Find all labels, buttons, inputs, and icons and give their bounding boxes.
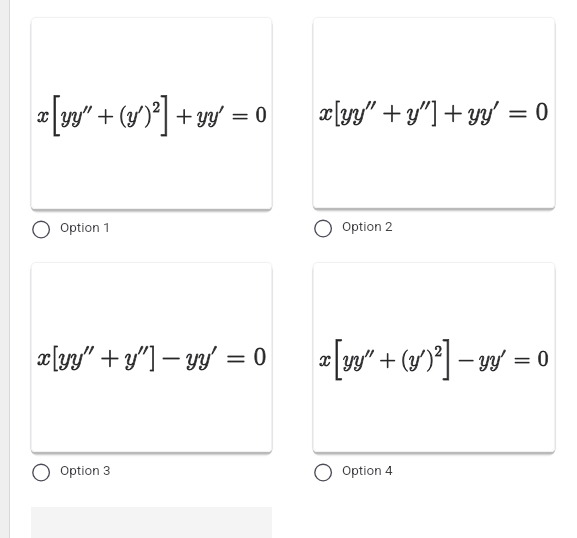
staticText: 𝑥[𝑦𝑦″ + 𝑦″] + 𝑦𝑦′ = 0 (319, 100, 549, 125)
staticText: 𝑥[𝑦𝑦″ + (𝑦′)2] + 𝑦𝑦′ = 0 (37, 93, 267, 134)
staticText: Option 1 (60, 219, 111, 235)
staticText: Option 3 (60, 462, 111, 478)
staticText: 𝑥[𝑦𝑦″ + (𝑦′)2] − 𝑦𝑦′ = 0 (319, 337, 549, 378)
button[interactable]: Option 3 (31, 452, 272, 490)
button[interactable]: 𝑥[𝑦𝑦″ + (𝑦′)2] + 𝑦𝑦′ = 0 (31, 17, 272, 209)
button[interactable]: Option 4 (313, 452, 555, 490)
staticText: 𝑥[𝑦𝑦″ + 𝑦″] + 𝑦𝑦′ = 0 (319, 100, 549, 125)
staticText: 𝑥[𝑦𝑦″ + (𝑦′)2] − 𝑦𝑦′ = 0 (319, 337, 549, 378)
button[interactable]: Option 1 (31, 209, 272, 247)
button[interactable]: Option 2 (313, 208, 555, 246)
button[interactable]: 𝑥[𝑦𝑦″ + (𝑦′)2] − 𝑦𝑦′ = 0 (313, 262, 555, 452)
staticText: Option 4 (342, 462, 393, 478)
staticText: 𝑥[𝑦𝑦″ + (𝑦′)2] + 𝑦𝑦′ = 0 (37, 93, 267, 134)
staticText: Option 2 (342, 218, 393, 234)
staticText: 𝑥[𝑦𝑦″ + 𝑦″] − 𝑦𝑦′ = 0 (37, 345, 267, 370)
button[interactable]: 𝑥[𝑦𝑦″ + 𝑦″] + 𝑦𝑦′ = 0 (313, 17, 555, 208)
button[interactable]: 𝑥[𝑦𝑦″ + 𝑦″] − 𝑦𝑦′ = 0 (31, 262, 272, 452)
staticText: 𝑥[𝑦𝑦″ + 𝑦″] − 𝑦𝑦′ = 0 (37, 345, 267, 370)
